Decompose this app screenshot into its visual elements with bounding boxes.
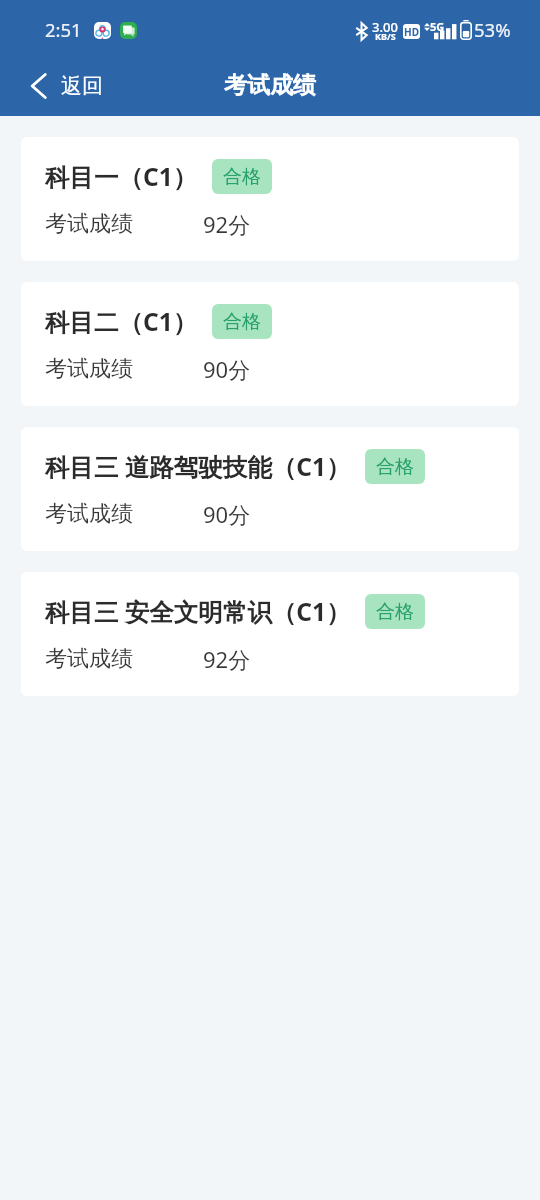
staticText: 科目一（C1） [45, 160, 198, 193]
staticText: 2:51 [45, 17, 82, 42]
staticText: 合格 [223, 165, 261, 189]
button[interactable]: 科目三 道路驾驶技能（C1） [21, 427, 519, 551]
staticText: 92分 [203, 644, 251, 674]
button[interactable]: 科目三 安全文明常识（C1） [21, 572, 519, 696]
staticText: 53% [474, 17, 511, 42]
staticText: KB/S [375, 30, 396, 42]
staticText: 科目三 安全文明常识（C1） [45, 595, 351, 628]
staticText: 考试成绩 [45, 645, 133, 673]
staticText: 考试成绩 [45, 500, 133, 528]
staticText: 科目二（C1） [45, 305, 198, 338]
staticText: 考试成绩 [45, 210, 133, 238]
staticText: 考试成绩 [45, 355, 133, 383]
staticText: 合格 [376, 600, 414, 624]
staticText: 90分 [203, 354, 251, 384]
staticText: 5G [430, 19, 445, 34]
staticText: 合格 [376, 455, 414, 479]
staticText: 返回 [61, 73, 103, 99]
staticText: 3.00 [372, 18, 398, 36]
button[interactable]: 科目二（C1） [21, 282, 519, 406]
staticText: 92分 [203, 209, 251, 239]
staticText: HD [404, 25, 419, 39]
staticText: 考试成绩 [224, 71, 316, 100]
staticText: 合格 [223, 310, 261, 334]
other: 返回 [31, 73, 46, 99]
staticText: 科目三 道路驾驶技能（C1） [45, 450, 351, 483]
staticText: 90分 [203, 499, 251, 529]
button[interactable]: 科目一（C1） [21, 137, 519, 261]
button[interactable]: 返回 [0, 56, 121, 116]
